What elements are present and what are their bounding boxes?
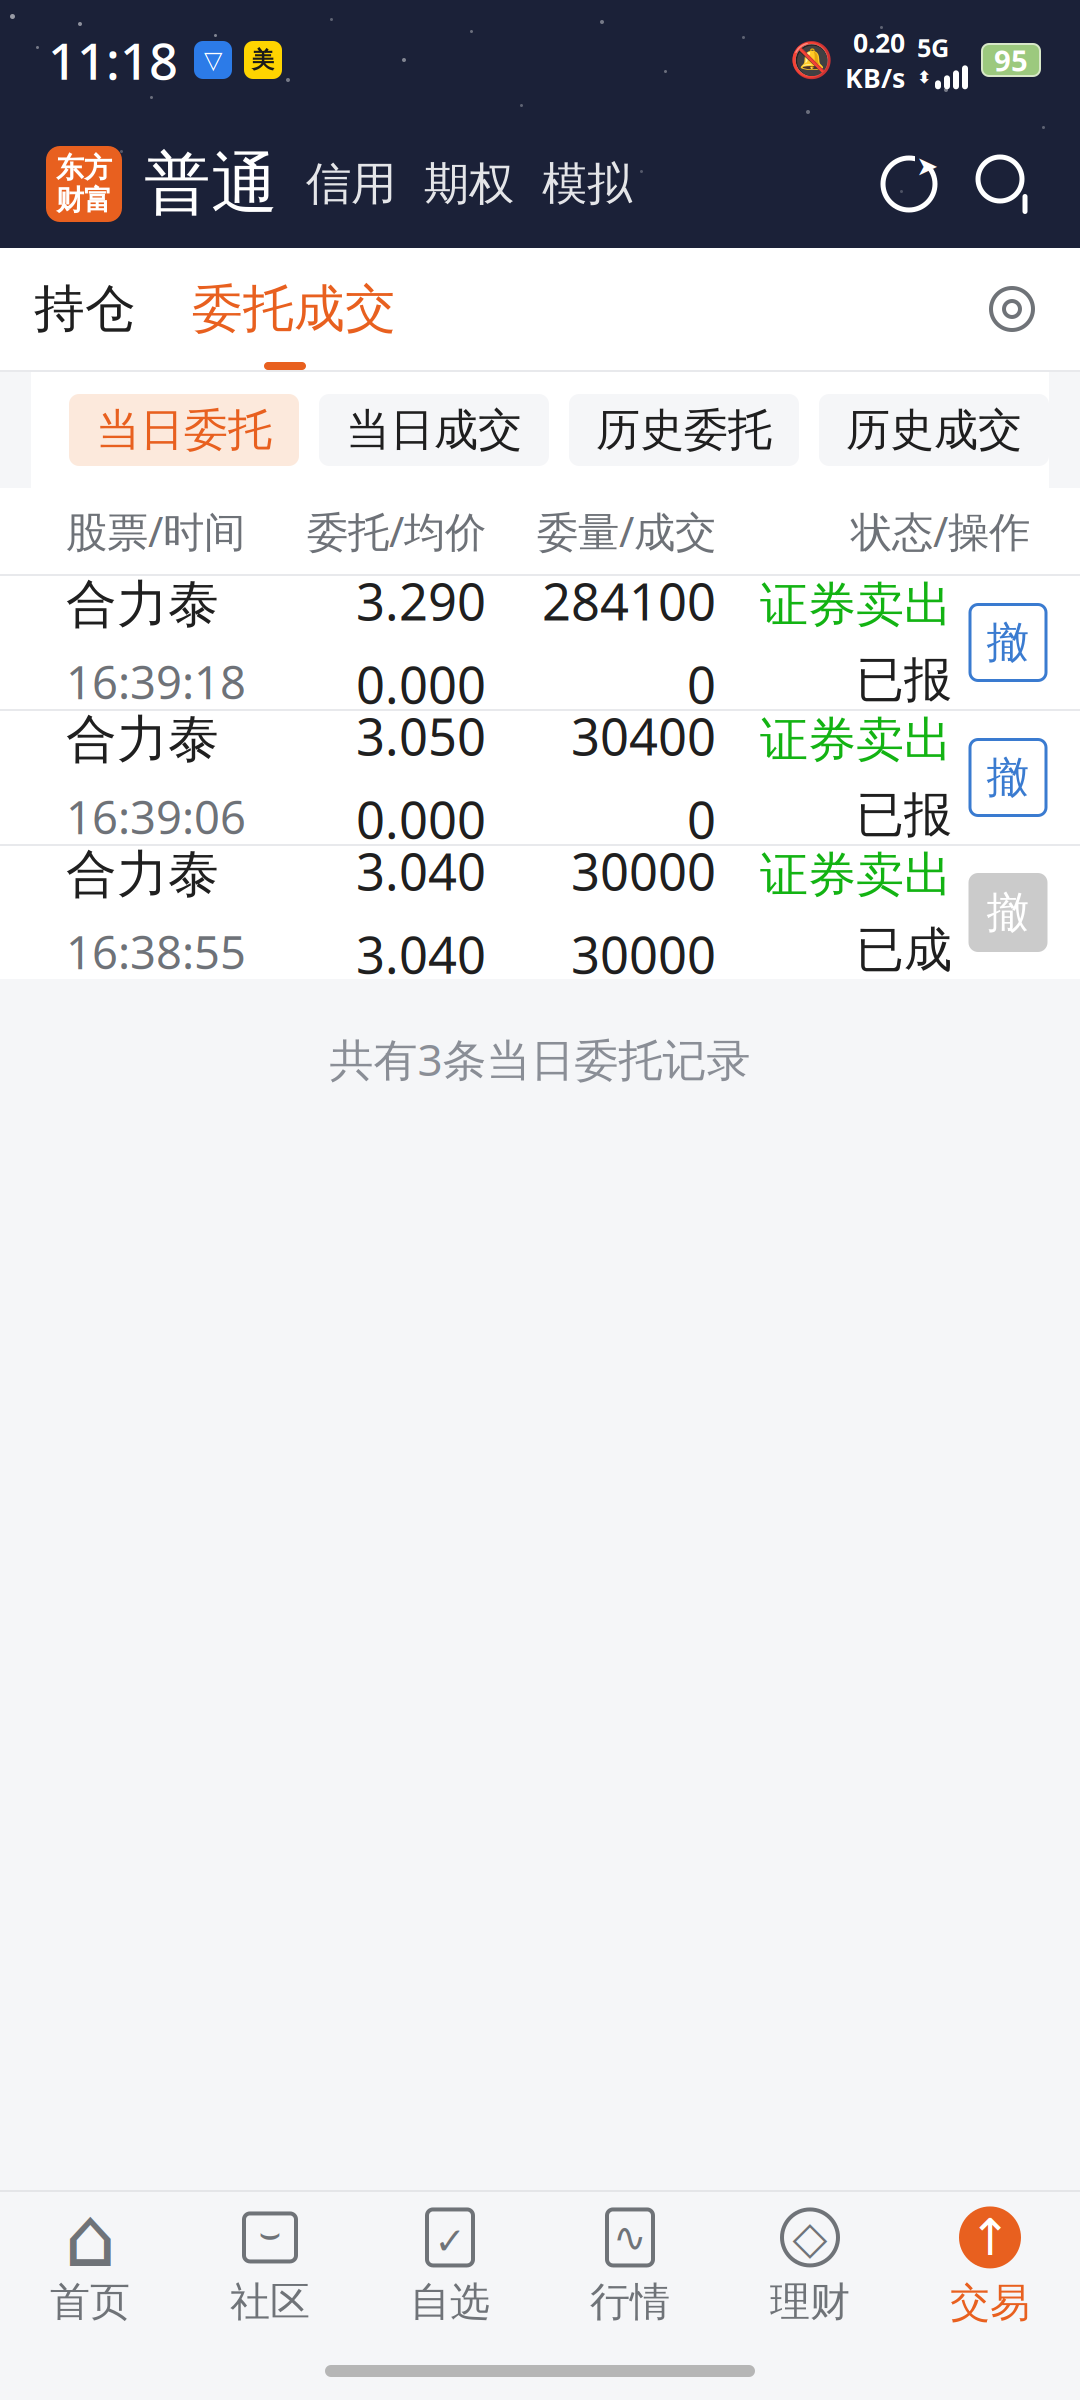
staticText: 11:18 [48,26,178,94]
staticText: 撤 [986,616,1029,669]
button[interactable]: 当日成交 [319,394,549,466]
staticText: ▽ [204,46,222,74]
staticText: ∿ [613,2215,647,2260]
staticText: ⌣ [258,2217,281,2251]
staticText: 持仓 [34,278,136,340]
button[interactable]: 合力泰 [0,846,1080,979]
staticText: 期权 [424,156,514,212]
button[interactable]: 历史成交 [819,394,1049,466]
staticText: 16:39:18 [66,651,246,712]
staticText: 3.050 [356,702,486,769]
staticText: 284100 [542,567,716,634]
staticText: 3.290 [356,567,486,634]
staticText: 撤 [986,751,1029,804]
staticText: 合力泰 [66,573,219,635]
staticText: 美 [251,46,274,74]
button[interactable]: 委托成交 [186,248,402,370]
button[interactable]: 普通 [122,143,278,225]
staticText: 已成 [856,920,952,979]
staticText: 信用 [306,156,396,212]
staticText: 证券卖出 [760,845,952,904]
button[interactable]: ✓ [360,2200,540,2334]
staticText: 财富 [56,183,112,217]
staticText: 历史委托 [596,403,772,457]
staticText: 状态/操作 [851,504,1030,558]
button[interactable]: 信用 [278,156,396,212]
staticText: ⬍ [917,67,932,87]
staticText: 0.20 [853,25,905,60]
staticText: 东方 [56,151,112,185]
staticText: 证券卖出 [760,575,952,634]
staticText: 🔕 [790,40,833,80]
staticText: 共有3条当日委托记录 [329,1030,750,1088]
staticText: 16:39:06 [66,786,246,847]
button[interactable]: ⌂ [0,2200,180,2334]
button[interactable]: 合力泰 [0,576,1080,709]
button[interactable]: 撤单 [970,739,1046,815]
button[interactable]: 当日委托 [69,394,299,466]
staticText: 委托成交 [192,278,396,340]
staticText: 已报 [856,650,952,709]
button[interactable]: 撤单 [970,604,1046,680]
staticText: 模拟 [542,156,632,212]
button[interactable]: ⌣ [180,2200,360,2334]
button[interactable]: 期权 [396,156,514,212]
staticText: 30000 [571,837,716,904]
staticText: 5G [917,31,949,64]
staticText: 委托/均价 [307,504,486,558]
button[interactable]: 搜索 [940,153,1036,215]
button[interactable]: ◇ [720,2200,900,2334]
staticText: 30400 [571,702,716,769]
staticText: ➤ [916,151,938,181]
staticText: 0.000 [356,650,486,718]
staticText: 证券卖出 [760,710,952,769]
staticText: 3.040 [356,837,486,904]
button[interactable]: 刷新 [878,153,940,215]
staticText: 理财 [770,2277,850,2326]
button[interactable]: ↑ [900,2200,1080,2334]
staticText: 16:38:55 [66,921,246,982]
staticText: 撤 [986,886,1029,939]
staticText: 0 [687,785,716,853]
staticText: 行情 [590,2277,670,2326]
button[interactable]: 合力泰 [0,711,1080,844]
staticText: 0.000 [356,785,486,853]
staticText: 30000 [571,920,716,988]
button[interactable]: 历史委托 [569,394,799,466]
staticText: 自选 [410,2277,490,2326]
staticText: 首页 [50,2277,130,2326]
staticText: 0 [687,650,716,718]
staticText: ◇ [792,2212,827,2263]
staticText: 当日委托 [96,403,272,457]
staticText: 普通 [144,143,278,225]
button[interactable]: ∿ [540,2200,720,2334]
staticText: 交易 [950,2278,1030,2327]
staticText: ✓ [434,2220,465,2263]
staticText: ⌂ [64,2190,116,2284]
staticText: 已报 [856,785,952,844]
staticText: 社区 [230,2277,310,2326]
staticText: KB/s [845,60,905,95]
button[interactable]: 东方财富 [46,146,122,222]
button[interactable]: 设置 [986,283,1038,335]
staticText: 合力泰 [66,843,219,905]
staticText: 历史成交 [846,403,1022,457]
staticText: 股票/时间 [66,504,245,558]
staticText: ↑ [969,2209,1011,2266]
button[interactable]: 撤单 [970,874,1046,950]
staticText: 当日成交 [346,403,522,457]
button[interactable]: 模拟 [514,156,632,212]
button[interactable]: 持仓 [28,248,142,370]
staticText: 委量/成交 [537,504,716,558]
staticText: 95 [994,40,1028,79]
staticText: 合力泰 [66,708,219,770]
staticText: 3.040 [356,920,486,988]
